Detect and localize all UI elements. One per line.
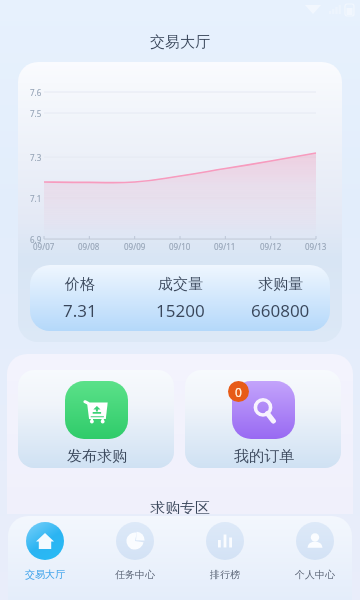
staticText: 7.31 <box>63 299 97 322</box>
staticText: 09/12 <box>260 241 282 252</box>
staticText: 6.9 <box>30 234 42 245</box>
staticText: 7.5 <box>30 108 42 119</box>
button[interactable]: 0 orders <box>185 370 341 468</box>
staticText: 求购量 <box>258 275 303 294</box>
staticText: 价格 <box>65 275 95 294</box>
staticText: 7.6 <box>30 87 42 98</box>
staticText: 09/11 <box>214 241 236 252</box>
staticText: 7.1 <box>30 193 42 204</box>
staticText: 09/07 <box>33 241 55 252</box>
staticText: 0 <box>235 384 242 400</box>
staticText: 09/08 <box>78 241 100 252</box>
staticText: 7.3 <box>30 152 42 163</box>
staticText: 排行榜 <box>210 568 240 581</box>
staticText: 09/09 <box>124 241 146 252</box>
button[interactable]: 交易大厅 <box>0 522 90 581</box>
staticText: 求购专区 <box>150 499 210 514</box>
staticText: 交易大厅 <box>25 568 65 581</box>
button[interactable]: 发布求购 <box>18 370 174 468</box>
staticText: 我的订单 <box>234 447 294 466</box>
staticText: 发布求购 <box>67 447 127 466</box>
staticText: 任务中心 <box>115 568 155 581</box>
staticText: 09/10 <box>169 241 191 252</box>
button[interactable]: 任务中心 <box>90 522 180 581</box>
other: 0 orders <box>228 381 249 402</box>
staticText: 个人中心 <box>295 568 335 581</box>
staticText: 09/13 <box>305 241 327 252</box>
button[interactable]: 排行榜 <box>180 522 270 581</box>
staticText: 交易大厅 <box>150 33 210 52</box>
button[interactable]: 个人中心 <box>270 522 360 581</box>
staticText: 15200 <box>156 299 205 322</box>
staticText: 成交量 <box>158 275 203 294</box>
staticText: 660800 <box>251 299 310 322</box>
